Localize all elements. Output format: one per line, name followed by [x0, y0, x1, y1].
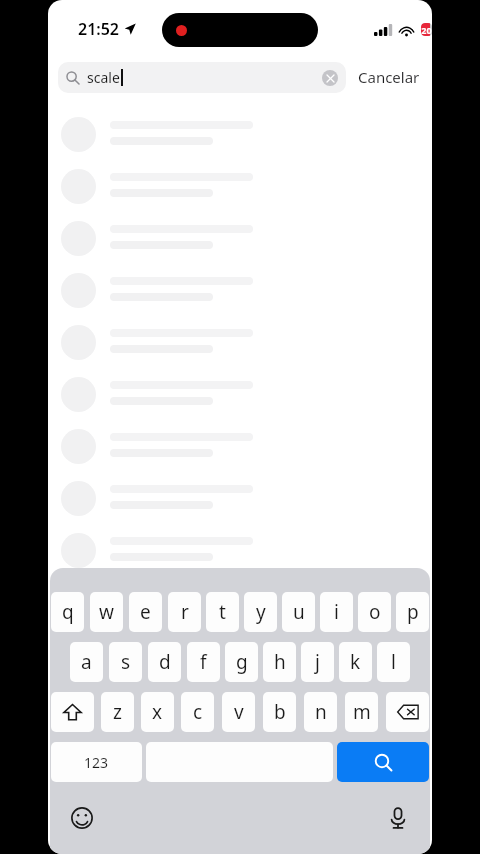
button[interactable]	[48, 117, 432, 169]
button[interactable]: Cancelar	[356, 63, 422, 91]
button[interactable]	[48, 429, 432, 481]
staticText: w	[99, 599, 114, 625]
staticText: e	[140, 599, 151, 625]
staticText: l	[391, 649, 396, 675]
button[interactable]: g	[225, 642, 258, 682]
staticText: Cancelar	[358, 67, 420, 87]
staticText: j	[315, 649, 320, 675]
button[interactable]: h	[263, 642, 296, 682]
staticText: g	[236, 649, 248, 675]
button[interactable]: Emoji	[68, 804, 96, 832]
button[interactable]	[48, 325, 432, 377]
staticText: n	[315, 699, 327, 725]
button[interactable]	[48, 273, 432, 325]
button[interactable]: y	[244, 592, 277, 632]
button[interactable]	[48, 221, 432, 273]
staticText: x	[152, 699, 163, 725]
staticText: i	[334, 599, 339, 625]
staticText: 21:52	[78, 18, 120, 40]
staticText: o	[369, 599, 381, 625]
button[interactable]: u	[282, 592, 315, 632]
button[interactable]: i	[320, 592, 353, 632]
button[interactable]: 123	[51, 742, 142, 782]
staticText: f	[200, 649, 207, 675]
staticText: d	[159, 649, 171, 675]
button[interactable]	[48, 481, 432, 533]
staticText: y	[256, 599, 266, 625]
button[interactable]: x	[141, 692, 174, 732]
staticText: t	[219, 599, 226, 625]
button[interactable]: a	[70, 642, 103, 682]
button[interactable]: n	[304, 692, 337, 732]
button[interactable]: t	[206, 592, 239, 632]
staticText: c	[193, 699, 203, 725]
staticText: a	[81, 649, 92, 675]
staticText: h	[274, 649, 286, 675]
button[interactable]: d	[148, 642, 181, 682]
button[interactable]: q	[51, 592, 84, 632]
staticText: s	[121, 649, 131, 675]
button[interactable]: m	[345, 692, 378, 732]
staticText: 20	[421, 24, 432, 36]
staticText: b	[274, 699, 286, 725]
button[interactable]: s	[109, 642, 142, 682]
button[interactable]: r	[168, 592, 201, 632]
button[interactable]: e	[129, 592, 162, 632]
staticText: u	[293, 599, 305, 625]
button[interactable]: v	[222, 692, 255, 732]
button[interactable]: p	[396, 592, 429, 632]
button[interactable]: Shift	[51, 692, 94, 732]
button[interactable]: scale	[58, 62, 346, 93]
button[interactable]: k	[339, 642, 372, 682]
button[interactable]	[48, 169, 432, 221]
button[interactable]: Clear search	[322, 70, 338, 86]
button[interactable]: f	[187, 642, 220, 682]
button[interactable]	[48, 377, 432, 429]
staticText: v	[234, 699, 244, 725]
button[interactable]: o	[358, 592, 391, 632]
staticText: 123	[84, 753, 109, 772]
button[interactable]: Dictation	[384, 804, 412, 832]
staticText: p	[407, 599, 419, 625]
button[interactable]: j	[301, 642, 334, 682]
staticText: z	[113, 699, 122, 725]
staticText: scale	[87, 68, 120, 87]
button[interactable]: b	[263, 692, 296, 732]
staticText: k	[350, 649, 361, 675]
button[interactable]: w	[90, 592, 123, 632]
button[interactable]: l	[377, 642, 410, 682]
button[interactable]: c	[181, 692, 214, 732]
staticText: q	[62, 599, 74, 625]
button[interactable]: Backspace	[386, 692, 429, 732]
button[interactable]: z	[101, 692, 134, 732]
button[interactable]	[48, 533, 432, 585]
button[interactable]: Search	[337, 742, 429, 782]
staticText: r	[181, 599, 189, 625]
staticText: m	[353, 699, 371, 725]
